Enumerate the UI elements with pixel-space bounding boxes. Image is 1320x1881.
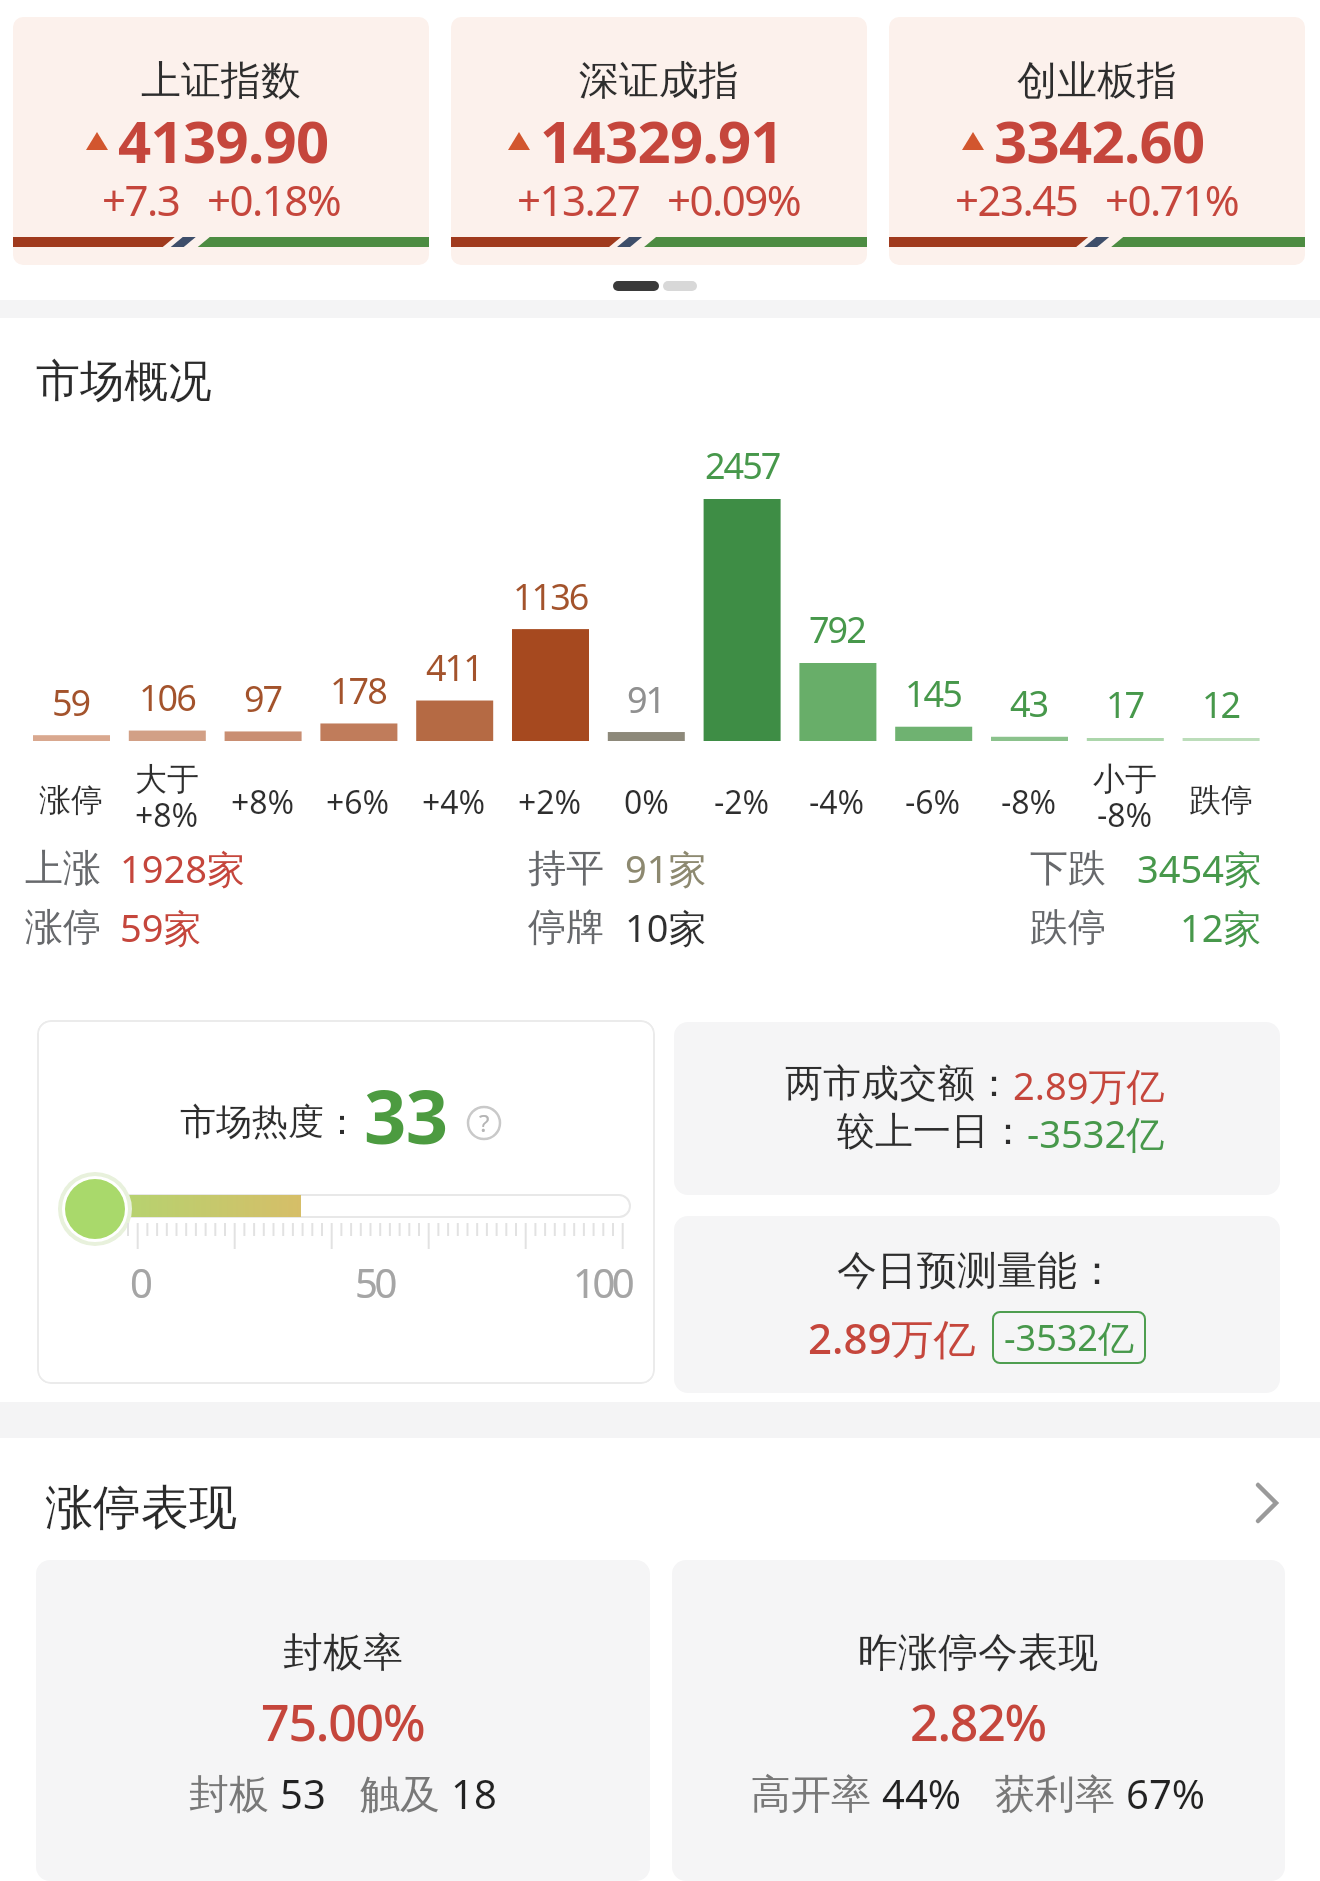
staticText: 停牌 <box>528 903 604 951</box>
staticText: 53 <box>280 1766 326 1820</box>
staticText: +13.27 <box>517 171 640 228</box>
staticText: -4% <box>809 780 865 820</box>
staticText: 大于 <box>135 759 199 799</box>
staticText: 12家 <box>1180 901 1262 953</box>
staticText: +7.3 <box>102 171 180 228</box>
staticText: 高开率 <box>751 1765 882 1820</box>
staticText: 持平 <box>528 844 604 892</box>
button[interactable]: 创业板指 <box>889 17 1305 265</box>
staticText: -3532亿 <box>1027 1107 1165 1159</box>
staticText: +0.18% <box>207 171 341 228</box>
staticText: 59家 <box>120 901 202 953</box>
staticText: 145 <box>905 669 961 718</box>
button[interactable]: 涨停表现 <box>0 1470 1320 1536</box>
staticText: 封板率 <box>283 1627 403 1677</box>
button[interactable]: 两市成交额： <box>674 1022 1280 1195</box>
staticText: 市场概况 <box>36 354 212 409</box>
staticText: 75.00% <box>261 1688 425 1756</box>
staticText: 涨停 <box>25 903 101 951</box>
staticText: ? <box>479 1106 490 1139</box>
staticText: 3342.60 <box>994 101 1205 180</box>
staticText: 昨涨停今表现 <box>858 1627 1098 1677</box>
staticText: +23.45 <box>955 171 1078 228</box>
staticText: 深证成指 <box>579 55 739 105</box>
staticText: 跌停 <box>1030 903 1106 951</box>
staticText: 18 <box>451 1766 497 1820</box>
staticText: 91 <box>627 675 665 724</box>
staticText: 0 <box>130 1255 150 1309</box>
staticText: 106 <box>139 673 195 722</box>
staticText: 91家 <box>625 842 707 894</box>
staticText: 17 <box>1106 680 1144 729</box>
staticText: 43 <box>1010 679 1048 728</box>
staticText: 10家 <box>625 901 707 953</box>
staticText: 12 <box>1202 680 1240 729</box>
staticText: 下跌 <box>1030 844 1106 892</box>
staticText: 涨停表现 <box>45 1478 237 1538</box>
staticText: -8% <box>1097 793 1153 833</box>
staticText: +0.71% <box>1105 171 1239 228</box>
staticText: 1928家 <box>120 842 245 894</box>
staticText: 2457 <box>705 441 780 490</box>
staticText: +6% <box>326 780 390 820</box>
staticText: 3454家 <box>1137 842 1262 894</box>
staticText: 100 <box>573 1255 632 1309</box>
staticText: 59 <box>52 678 90 727</box>
staticText: 33 <box>364 1065 448 1166</box>
staticText: 两市成交额： <box>785 1059 1013 1107</box>
button[interactable] <box>37 1020 655 1384</box>
staticText: 封板 <box>189 1765 280 1820</box>
staticText: +8% <box>135 793 199 833</box>
staticText: 获利率 <box>995 1765 1126 1820</box>
staticText: 2.89万亿 <box>1013 1059 1165 1111</box>
button[interactable] <box>672 1560 1285 1881</box>
staticText: 创业板指 <box>1017 55 1177 105</box>
staticText: 今日预测量能： <box>837 1245 1117 1295</box>
staticText: -6% <box>905 780 961 820</box>
staticText: 上证指数 <box>141 55 301 105</box>
staticText: 触及 <box>360 1765 451 1820</box>
staticText: -8% <box>1001 780 1057 820</box>
staticText: 178 <box>330 666 386 715</box>
staticText: 97 <box>244 674 282 723</box>
staticText: 1136 <box>513 572 588 621</box>
staticText: 0% <box>624 780 669 820</box>
staticText: -2% <box>714 780 770 820</box>
staticText: +0.09% <box>667 171 801 228</box>
staticText: 50 <box>355 1255 394 1309</box>
button[interactable]: 深证成指 <box>451 17 867 265</box>
staticText: 411 <box>426 643 482 692</box>
staticText: 4139.90 <box>118 101 329 180</box>
staticText: 44% <box>882 1766 961 1820</box>
staticText: 792 <box>809 605 865 654</box>
staticText: 2.82% <box>910 1688 1046 1756</box>
staticText: 涨停 <box>39 780 103 820</box>
staticText: +4% <box>422 780 486 820</box>
staticText: +2% <box>518 780 582 820</box>
staticText: +8% <box>231 780 295 820</box>
staticText: 较上一日： <box>837 1107 1027 1155</box>
staticText: 跌停 <box>1189 780 1253 820</box>
staticText: 小于 <box>1093 759 1157 799</box>
staticText: 上涨 <box>25 844 101 892</box>
button[interactable] <box>36 1560 650 1881</box>
staticText: 2.89万亿 <box>808 1309 976 1366</box>
staticText: 市场热度： <box>180 1099 360 1144</box>
staticText: 67% <box>1126 1766 1205 1820</box>
button[interactable]: 今日预测量能： <box>674 1216 1280 1393</box>
staticText: -3532亿 <box>1004 1313 1134 1362</box>
staticText: 14329.91 <box>540 101 783 180</box>
button[interactable]: 上证指数 <box>13 17 429 265</box>
